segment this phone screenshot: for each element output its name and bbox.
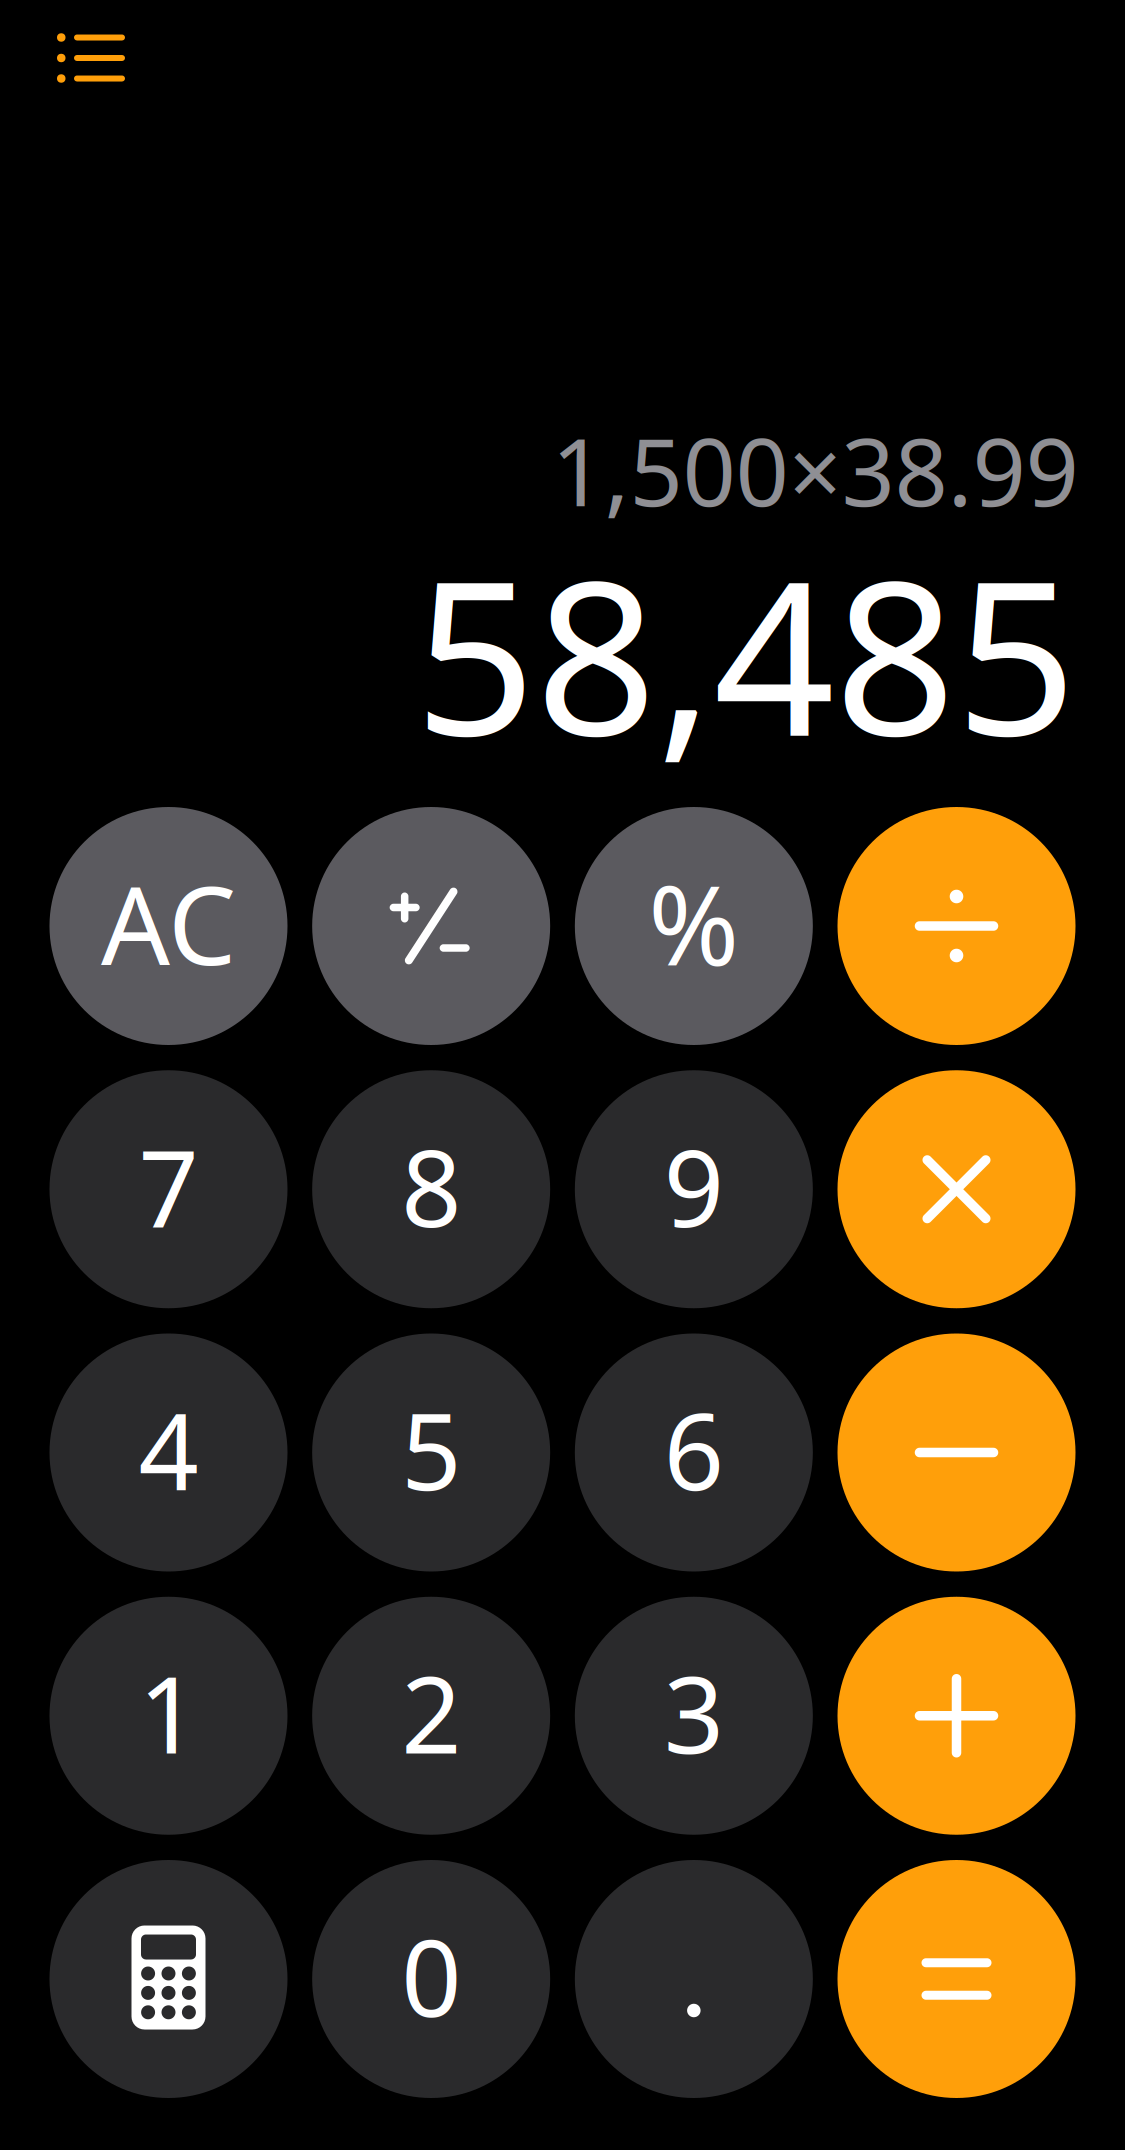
button[interactable]: All Clear [49, 807, 287, 1045]
button[interactable]: 4 [49, 1333, 287, 1571]
button[interactable]: Divide [837, 807, 1075, 1045]
staticText: 5 [401, 1380, 461, 1519]
staticText: 58,485 [414, 512, 1076, 794]
staticText: 1 [138, 1643, 198, 1783]
button[interactable]: Equals [837, 1860, 1075, 2098]
button[interactable]: 2 [312, 1597, 550, 1835]
button[interactable]: 3 [575, 1597, 813, 1835]
button[interactable]: 0 [312, 1860, 550, 2098]
staticText: 0 [401, 1906, 461, 2046]
button[interactable]: History [25, 0, 157, 116]
staticText: 2 [401, 1643, 461, 1783]
button[interactable]: 7 [49, 1070, 287, 1308]
button[interactable]: 5 [312, 1333, 550, 1571]
button[interactable]: 6 [575, 1333, 813, 1571]
button[interactable]: 8 [312, 1070, 550, 1308]
staticText: 7 [138, 1116, 198, 1256]
staticText: 8 [401, 1116, 461, 1256]
staticText: 1,500×38.99 [551, 408, 1078, 532]
button[interactable]: Percent [575, 807, 813, 1045]
staticText: AC [101, 851, 236, 995]
staticText: 4 [138, 1380, 198, 1519]
button[interactable]: 9 [575, 1070, 813, 1308]
staticText: 9 [664, 1116, 724, 1256]
button[interactable]: 1 [49, 1597, 287, 1835]
button[interactable]: Multiply [837, 1070, 1075, 1308]
button[interactable]: Plus Minus [312, 807, 550, 1045]
button[interactable]: Plus [837, 1597, 1075, 1835]
button[interactable]: Calculator [49, 1860, 287, 2098]
staticText: % [648, 850, 739, 996]
button[interactable]: Decimal Point [575, 1860, 813, 2098]
staticText: 6 [664, 1380, 724, 1519]
staticText: 3 [664, 1643, 724, 1783]
button[interactable]: Minus [837, 1333, 1075, 1571]
